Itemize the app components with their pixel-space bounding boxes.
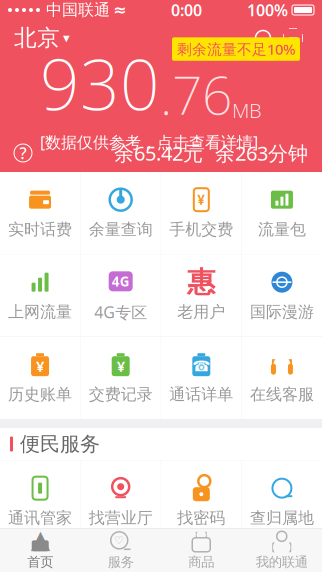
button[interactable]: ♡ (80, 529, 161, 572)
staticText: 在线客服 (250, 385, 314, 404)
staticText: .76 (160, 59, 232, 129)
staticText: 930 (40, 37, 160, 129)
staticText: ? (19, 142, 26, 164)
button[interactable]: 流量包 (242, 172, 322, 254)
button[interactable]: 剩余流量不足10% (172, 37, 300, 61)
staticText: ≈ (113, 1, 126, 19)
staticText: 手机交费 (169, 220, 233, 239)
button[interactable]: 帮助 (14, 144, 32, 162)
staticText: 通话详单 (169, 385, 233, 404)
button[interactable]: 实时话费 (0, 172, 80, 254)
staticText: ☎ (192, 358, 210, 374)
button[interactable]: 余65.42元 余263分钟 (114, 140, 308, 166)
button[interactable]: 通讯管家 (0, 460, 80, 542)
staticText: 剩余流量不足10% (177, 39, 295, 59)
button[interactable]: 余量查询 (81, 172, 161, 254)
staticText: 交费记录 (89, 385, 153, 404)
button[interactable]: [数据仅供参考，点击查看详情] (40, 131, 258, 153)
button[interactable]: 国际漫游 (242, 254, 322, 336)
staticText: 查归属地 (250, 508, 314, 528)
button[interactable]: ¥ (161, 172, 241, 254)
staticText: 通讯管家 (8, 508, 72, 528)
staticText: 找营业厅 (89, 508, 153, 528)
button[interactable]: ☎ (161, 337, 241, 419)
button[interactable]: ▲ (0, 529, 80, 572)
staticText: 商品 (188, 554, 214, 570)
staticText: ▲ (31, 525, 50, 554)
staticText: 国际漫游 (250, 302, 314, 322)
staticText: 余量查询 (89, 220, 153, 239)
button[interactable]: 北京 (14, 24, 70, 52)
button[interactable]: 找营业厅 (81, 460, 161, 542)
staticText: 惠 (187, 265, 215, 299)
staticText: 便民服务 (20, 432, 100, 456)
staticText: 我的联通 (256, 554, 308, 570)
button[interactable]: 我的联通 (241, 529, 322, 572)
staticText: 余65.42元 余263分钟 (114, 140, 308, 166)
staticText: ♡ (114, 534, 124, 546)
staticText: 中国联通 (46, 0, 110, 20)
button[interactable]: 找密码 (161, 460, 241, 542)
staticText: ¥ (36, 356, 44, 376)
button[interactable]: 惠 (161, 254, 241, 336)
staticText: ¥ (197, 191, 205, 208)
staticText: 首页 (27, 554, 53, 570)
staticText: 上网流量 (8, 302, 72, 322)
staticText: 找密码 (177, 508, 225, 528)
button[interactable]: 搜索 (248, 23, 278, 53)
staticText: [数据仅供参考，点击查看详情] (40, 131, 258, 153)
button[interactable]: 在线客服 (242, 337, 322, 419)
button[interactable]: 查归属地 (242, 460, 322, 542)
staticText: 历史账单 (8, 385, 72, 404)
staticText: 流量包 (258, 220, 306, 239)
button[interactable]: ¥ (0, 337, 80, 419)
staticText: 0:00 (171, 0, 202, 21)
staticText: 北京 (14, 24, 60, 52)
button[interactable]: 商品 (161, 529, 241, 572)
staticText: 4G (112, 272, 130, 290)
staticText: ▾ (63, 30, 70, 45)
button[interactable]: 上网流量 (0, 254, 80, 336)
button[interactable]: 扫一扫 (278, 23, 308, 53)
staticText: 实时话费 (8, 220, 72, 239)
staticText: 4G专区 (94, 301, 147, 323)
staticText: ¥ (117, 356, 125, 376)
staticText: 老用户 (177, 302, 225, 322)
button[interactable]: 4G (81, 254, 161, 336)
button[interactable]: ¥ (81, 337, 161, 419)
staticText: 服务 (108, 554, 134, 570)
staticText: MB (232, 97, 262, 123)
staticText: 100% (247, 0, 288, 21)
